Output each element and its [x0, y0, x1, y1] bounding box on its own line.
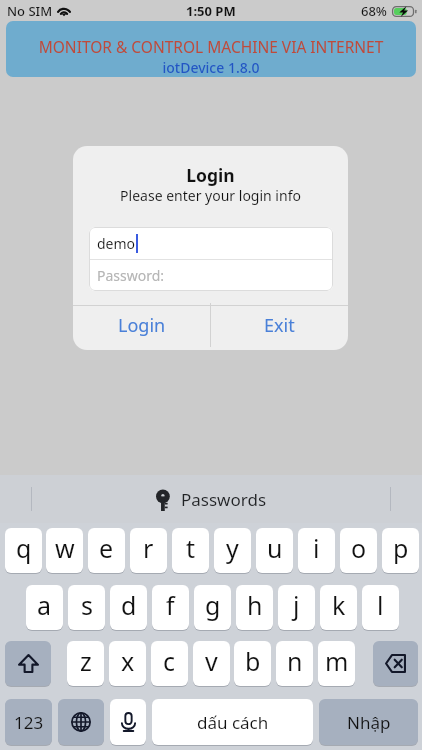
staticText: iotDevice 1.8.0	[6, 58, 416, 77]
staticText: r	[143, 531, 154, 565]
staticText: Nhập	[347, 711, 391, 734]
button[interactable]: m	[318, 641, 355, 686]
staticText: q	[16, 531, 32, 565]
button[interactable]: f	[152, 585, 189, 630]
staticText: y	[226, 531, 239, 565]
staticText: t	[186, 531, 196, 565]
button[interactable]: d	[110, 585, 147, 630]
button[interactable]: Passwords	[156, 488, 267, 511]
staticText: e	[99, 531, 114, 565]
staticText: 68%	[361, 2, 387, 20]
button[interactable]: y	[214, 528, 251, 573]
button[interactable]: Shift	[5, 641, 51, 686]
button[interactable]: a	[26, 585, 63, 630]
button[interactable]: dấu cách	[152, 699, 313, 745]
button[interactable]: k	[320, 585, 357, 630]
button[interactable]: g	[194, 585, 231, 630]
staticText: Password:	[97, 266, 165, 285]
button[interactable]: p	[382, 528, 419, 573]
staticText: g	[205, 588, 221, 622]
button[interactable]: Next keyboard	[58, 699, 104, 745]
button[interactable]: t	[172, 528, 209, 573]
staticText: u	[267, 531, 283, 565]
staticText: n	[287, 644, 303, 678]
staticText: v	[205, 644, 218, 678]
staticText: j	[293, 588, 300, 622]
staticText: Login	[118, 313, 166, 338]
staticText: f	[166, 588, 175, 622]
button[interactable]: e	[88, 528, 125, 573]
staticText: h	[247, 588, 263, 622]
button[interactable]: b	[234, 641, 271, 686]
button[interactable]: u	[256, 528, 293, 573]
button[interactable]: r	[130, 528, 167, 573]
button[interactable]: l	[362, 585, 399, 630]
button[interactable]: Dictate	[110, 699, 146, 745]
button[interactable]: z	[67, 641, 104, 686]
staticText: dấu cách	[197, 711, 269, 734]
staticText: p	[393, 531, 409, 565]
button[interactable]: i	[298, 528, 335, 573]
button[interactable]: Exit	[211, 303, 348, 347]
button[interactable]: j	[278, 585, 315, 630]
button[interactable]: o	[340, 528, 377, 573]
button[interactable]: n	[276, 641, 313, 686]
staticText: k	[332, 588, 346, 622]
staticText: l	[377, 588, 384, 622]
staticText: m	[325, 644, 349, 678]
staticText: c	[163, 644, 176, 678]
staticText: 1:50 PM	[186, 2, 236, 20]
staticText: 123	[14, 711, 44, 734]
staticText: Passwords	[181, 488, 267, 511]
button[interactable]: q	[5, 528, 42, 573]
staticText: Please enter your login info	[73, 186, 348, 205]
staticText: Login	[73, 163, 348, 187]
button[interactable]: 123	[5, 699, 52, 745]
staticText: i	[313, 531, 320, 565]
staticText: demo	[97, 234, 136, 253]
button[interactable]: x	[109, 641, 146, 686]
button[interactable]: c	[151, 641, 188, 686]
staticText: d	[121, 588, 137, 622]
button[interactable]: Backspace	[373, 641, 418, 686]
staticText: z	[80, 644, 92, 678]
button[interactable]: h	[236, 585, 273, 630]
button[interactable]: s	[68, 585, 105, 630]
button[interactable]: Login	[73, 303, 210, 347]
staticText: a	[37, 588, 52, 622]
staticText: b	[245, 644, 261, 678]
staticText: w	[55, 531, 75, 565]
button[interactable]: w	[46, 528, 83, 573]
staticText: s	[81, 588, 93, 622]
button[interactable]: v	[193, 641, 230, 686]
staticText: MONITOR & CONTROL MACHINE VIA INTERNET	[6, 36, 416, 57]
staticText: Exit	[264, 313, 295, 338]
button[interactable]: Nhập	[319, 699, 418, 745]
staticText: o	[351, 531, 367, 565]
staticText: No SIM	[7, 2, 53, 20]
staticText: x	[121, 644, 135, 678]
